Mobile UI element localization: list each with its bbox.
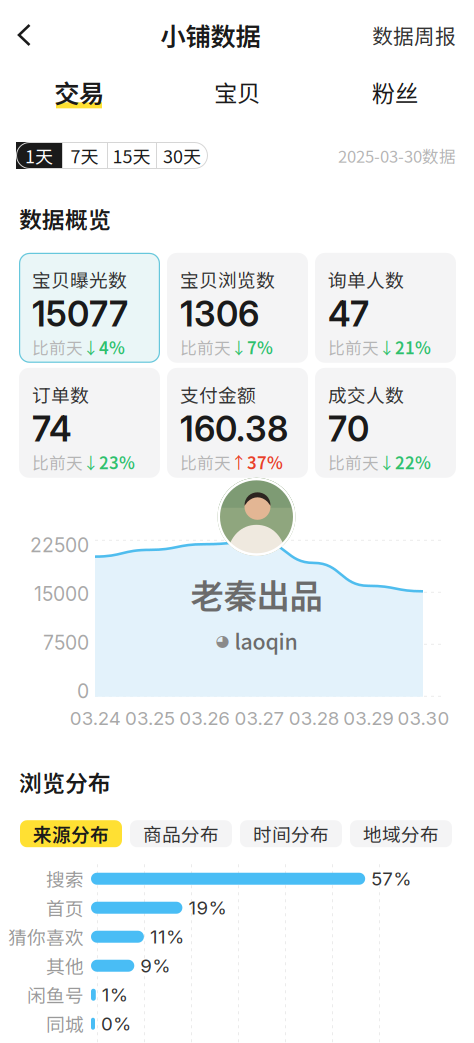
staticText: 交易 [54,74,104,110]
staticText: 商品分布 [143,820,219,847]
staticText: laoqin [234,625,297,656]
staticText: 15天 [112,142,150,169]
staticText: 闲鱼号 [27,981,84,1008]
button[interactable]: 1天 [16,142,62,169]
button[interactable]: 成交人数 [315,368,456,478]
staticText: 70 [328,408,369,450]
staticText: 数据周报 [372,20,456,50]
staticText: 22% [395,450,431,474]
staticText: 浏览分布 [19,765,111,798]
button[interactable]: 宝贝 [158,76,316,108]
staticText: 支付金额 [180,381,256,408]
button[interactable]: 支付金额 [167,368,308,478]
staticText: 47 [328,293,369,335]
staticText: 03.24 [70,707,121,729]
staticText: 0% [101,1012,131,1035]
staticText: ↓ [231,335,247,358]
staticText: 2025-03-30数据 [338,143,456,167]
staticText: 首页 [46,894,84,921]
button[interactable]: 商品分布 [130,820,232,847]
button[interactable]: 订单数 [19,368,160,478]
staticText: 粉丝 [372,75,418,109]
button[interactable]: 15天 [107,142,156,169]
staticText: 时间分布 [253,820,329,847]
staticText: 老秦出品 [190,570,322,618]
staticText: 比前天 [328,335,379,359]
staticText: 成交人数 [328,381,404,408]
staticText: 160.38 [180,408,288,450]
staticText: 0 [77,680,89,703]
button[interactable]: Back [0,0,49,70]
staticText: 9% [140,954,170,977]
staticText: 宝贝 [214,75,260,109]
staticText: 来源分布 [33,820,109,847]
staticText: 37% [247,450,283,474]
staticText: 30天 [163,142,201,169]
staticText: 03.27 [234,707,284,729]
staticText: 数据概览 [19,202,111,235]
staticText: 询单人数 [328,266,404,293]
staticText: 小铺数据 [160,17,260,53]
staticText: 搜索 [46,865,84,892]
staticText: 7% [247,335,273,359]
staticText: 03.28 [289,707,340,729]
staticText: 7天 [70,142,98,169]
staticText: ↓ [83,335,99,358]
staticText: 7500 [43,631,89,654]
staticText: 11% [150,925,184,948]
staticText: 4% [99,335,125,359]
staticText: 19% [188,896,226,919]
staticText: ↑ [231,450,247,473]
button[interactable]: 粉丝 [316,76,474,108]
staticText: 宝贝曝光数 [32,266,127,293]
button[interactable]: 地域分布 [350,820,452,847]
button[interactable]: 宝贝曝光数 [19,253,160,363]
staticText: 地域分布 [363,820,439,847]
button[interactable]: 询单人数 [315,253,456,363]
staticText: 03.29 [343,707,394,729]
staticText: 1天 [25,142,53,169]
staticText: 22500 [30,534,89,557]
staticText: ↓ [379,450,395,473]
button[interactable]: 数据周报 [372,0,474,70]
staticText: 同城 [46,1010,84,1037]
staticText: 宝贝浏览数 [180,266,275,293]
staticText: 74 [32,408,72,450]
staticText: 比前天 [32,335,83,359]
staticText: ↓ [379,335,395,358]
button[interactable]: 来源分布 [20,820,122,847]
staticText: 03.26 [179,707,230,729]
staticText: 1% [102,983,128,1006]
staticText: 比前天 [328,450,379,474]
staticText: 23% [99,450,135,474]
staticText: 比前天 [180,450,231,474]
staticText: ↓ [83,450,99,473]
staticText: 03.30 [398,707,450,729]
staticText: 03.25 [125,707,175,729]
staticText: 15077 [32,293,128,335]
staticText: 15000 [34,582,89,606]
staticText: 其他 [46,952,84,979]
button[interactable]: 30天 [156,142,208,169]
button[interactable]: 宝贝浏览数 [167,253,308,363]
staticText: 比前天 [180,335,231,359]
button[interactable]: 7天 [62,142,107,169]
staticText: 21% [395,335,431,359]
staticText: 57% [371,867,411,890]
button[interactable]: 交易 [0,76,158,108]
staticText: 订单数 [32,381,89,408]
staticText: 猜你喜欢 [8,923,84,950]
staticText: 1306 [180,293,259,335]
button[interactable]: 时间分布 [240,820,342,847]
staticText: 比前天 [32,450,83,474]
staticText: ◕ [215,631,229,650]
